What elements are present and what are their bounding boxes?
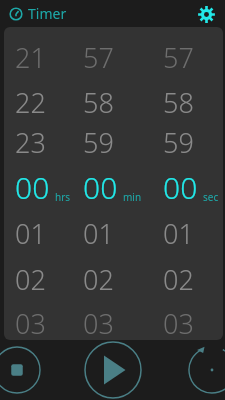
button[interactable]: Reset [187, 345, 225, 395]
staticText: 03 [83, 305, 114, 340]
button[interactable]: 01 [163, 215, 194, 252]
staticText: 00 [15, 167, 50, 208]
staticText: 02 [15, 261, 46, 298]
button[interactable]: 00 [15, 167, 71, 208]
staticText: 21 [15, 39, 46, 76]
button[interactable]: Settings [195, 3, 217, 25]
button[interactable]: 00 [163, 167, 219, 208]
staticText: 59 [163, 124, 194, 161]
button[interactable]: 58 [163, 84, 194, 121]
staticText: 03 [15, 305, 46, 340]
staticText: 01 [83, 215, 114, 252]
button[interactable]: 03 [163, 305, 194, 340]
staticText: 57 [83, 39, 114, 76]
button[interactable]: Start [82, 340, 144, 400]
button[interactable]: 57 [83, 39, 114, 76]
button[interactable]: 22 [15, 84, 46, 121]
button[interactable]: 59 [83, 124, 114, 161]
button[interactable]: 01 [15, 215, 46, 252]
staticText: 58 [83, 84, 114, 121]
button[interactable]: 03 [83, 305, 114, 340]
staticText: 22 [15, 84, 46, 121]
staticText: 01 [15, 215, 46, 252]
staticText: 02 [163, 261, 194, 298]
button[interactable]: 02 [163, 261, 194, 298]
button[interactable]: 58 [83, 84, 114, 121]
staticText: 58 [163, 84, 194, 121]
button[interactable]: Timer [9, 4, 67, 23]
staticText: min [123, 190, 142, 204]
staticText: 23 [15, 124, 46, 161]
staticText: 00 [83, 167, 118, 208]
staticText: 02 [83, 261, 114, 298]
staticText: 57 [163, 39, 194, 76]
button[interactable]: 21 [15, 39, 46, 76]
button[interactable]: Stop [0, 345, 42, 395]
button[interactable]: 03 [15, 305, 46, 340]
button[interactable]: 23 [15, 124, 46, 161]
staticText: sec [203, 190, 219, 204]
staticText: 03 [163, 305, 194, 340]
button[interactable]: 02 [15, 261, 46, 298]
staticText: 01 [163, 215, 194, 252]
button[interactable]: 02 [83, 261, 114, 298]
button[interactable]: 01 [83, 215, 114, 252]
button[interactable]: 59 [163, 124, 194, 161]
button[interactable]: 00 [83, 167, 142, 208]
button[interactable]: 57 [163, 39, 194, 76]
staticText: hrs [55, 190, 71, 204]
staticText: Timer [28, 4, 67, 23]
staticText: 59 [83, 124, 114, 161]
staticText: 00 [163, 167, 198, 208]
